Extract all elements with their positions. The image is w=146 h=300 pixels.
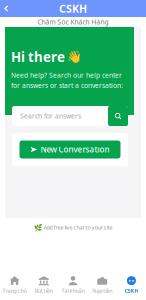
- button[interactable]: Search for answers: [12, 106, 108, 126]
- button[interactable]: Trang chủ: [0, 276, 29, 294]
- staticText: 🌿: [33, 224, 41, 231]
- staticText: CSKH: [124, 287, 138, 294]
- staticText: Tài khoản: [61, 287, 84, 294]
- staticText: Search for answers: [20, 112, 81, 120]
- button[interactable]: Search: [108, 106, 128, 126]
- button[interactable]: New Conversation: [19, 140, 120, 158]
- staticText: Trang chủ: [3, 287, 27, 294]
- staticText: 👋: [67, 50, 82, 64]
- staticText: Rút tiền: [35, 287, 53, 294]
- staticText: CSKH: [59, 1, 87, 16]
- staticText: New Conversation: [40, 144, 109, 155]
- staticText: Need help? Search our help center: [11, 71, 122, 80]
- button[interactable]: Back: [0, 0, 13, 17]
- button[interactable]: CSKH: [117, 276, 146, 294]
- button[interactable]: Rút tiền: [29, 276, 58, 294]
- staticText: for answers or start a conversation:: [11, 81, 123, 90]
- staticText: Chăm Sóc Khách Hàng: [37, 18, 108, 26]
- staticText: Add free live chat to your site: [43, 224, 112, 231]
- button[interactable]: Nạp tiền: [88, 276, 117, 294]
- staticText: Hi there: [11, 48, 65, 66]
- staticText: Nạp tiền: [92, 287, 112, 294]
- button[interactable]: Tài khoản: [58, 276, 88, 294]
